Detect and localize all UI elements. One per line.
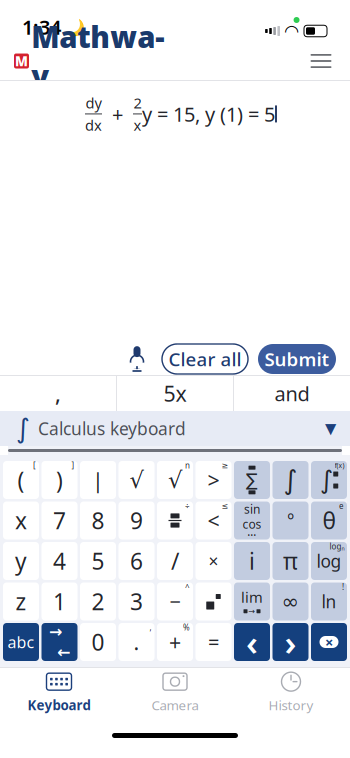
staticText: 7 [53, 505, 66, 535]
staticText: y = 15, y (1) = 5 [142, 101, 275, 127]
button[interactable] [272, 623, 308, 661]
button[interactable]: Submit [258, 344, 336, 374]
button[interactable]: ÷ [157, 501, 193, 539]
staticText: × [208, 549, 218, 572]
button[interactable]: Menu [300, 44, 342, 78]
button[interactable]: ≤ [195, 501, 231, 539]
button[interactable]: Logarithm base n [311, 542, 347, 580]
staticText: Submit [264, 347, 329, 371]
staticText: × [325, 632, 333, 652]
button[interactable]: Keyboard [1, 669, 117, 717]
staticText: z [15, 586, 26, 616]
button[interactable]: Definite integral [311, 461, 347, 499]
button[interactable]: [ [3, 461, 39, 499]
button[interactable]: ] [41, 461, 77, 499]
staticText: 5x [163, 379, 186, 408]
button[interactable] [41, 582, 77, 620]
button[interactable] [272, 582, 308, 620]
button[interactable] [80, 461, 116, 499]
staticText: a Chegg· service [101, 94, 164, 105]
button[interactable]: % [157, 623, 193, 661]
staticText: logₙ [329, 541, 344, 552]
button[interactable] [80, 582, 116, 620]
staticText: ∑ [246, 470, 258, 490]
button[interactable] [195, 623, 231, 661]
button[interactable] [3, 542, 39, 580]
button[interactable] [3, 582, 39, 620]
button[interactable] [3, 623, 39, 661]
button[interactable]: Switch keyboard layout [41, 623, 77, 661]
staticText: | [92, 466, 104, 494]
button[interactable] [80, 542, 116, 580]
button[interactable]: Voice input [122, 343, 152, 375]
button[interactable]: ∫ [0, 411, 350, 446]
staticText: ° [287, 509, 294, 532]
staticText: θ [322, 505, 335, 535]
staticText: Calculus keyboard [38, 417, 186, 440]
staticText: and [274, 380, 309, 407]
staticText: dy [85, 93, 101, 112]
staticText: Keyboard [27, 696, 90, 714]
button[interactable]: Clear all [162, 344, 248, 374]
staticText: lim [241, 587, 263, 607]
staticText: ln [321, 590, 336, 613]
staticText: → [248, 607, 255, 616]
staticText: % [183, 622, 190, 633]
button[interactable]: Delete [311, 623, 347, 661]
staticText: + [169, 628, 181, 656]
button[interactable]: , [0, 376, 116, 411]
button[interactable] [272, 501, 308, 539]
staticText: M [15, 52, 28, 70]
button[interactable] [80, 501, 116, 539]
button[interactable]: e [311, 501, 347, 539]
staticText: + [102, 101, 133, 127]
button[interactable] [234, 623, 270, 661]
button[interactable] [3, 501, 39, 539]
staticText: √ [129, 467, 143, 493]
button[interactable]: , [118, 623, 154, 661]
button[interactable]: Camera [117, 669, 233, 717]
button[interactable] [118, 461, 154, 499]
staticText: − [169, 588, 180, 615]
staticText: √ [168, 467, 182, 493]
button[interactable]: History [233, 669, 349, 717]
button[interactable] [41, 501, 77, 539]
button[interactable]: ^ [157, 582, 193, 620]
staticText: n [185, 460, 190, 471]
staticText: Mathway [31, 17, 164, 95]
button[interactable]: Summation [234, 461, 270, 499]
button[interactable] [272, 461, 308, 499]
button[interactable] [80, 623, 116, 661]
staticText: ∞ [281, 589, 299, 614]
button[interactable]: and [234, 376, 350, 411]
button[interactable] [41, 542, 77, 580]
staticText: ) [56, 465, 63, 495]
staticText: < [207, 506, 219, 535]
staticText: ‹ [246, 619, 258, 665]
staticText: x [15, 505, 27, 535]
button[interactable] [118, 542, 154, 580]
button[interactable]: Trigonometric functions [234, 501, 270, 539]
staticText: ∫ [283, 465, 297, 495]
button[interactable]: ≥ [195, 461, 231, 499]
button[interactable] [195, 542, 231, 580]
button[interactable]: n [157, 461, 193, 499]
staticText: Clear all [168, 347, 241, 371]
staticText: y [15, 546, 27, 576]
staticText: 3 [130, 586, 143, 616]
button[interactable] [118, 582, 154, 620]
button[interactable] [195, 582, 231, 620]
staticText: Camera [151, 696, 198, 714]
staticText: cos [242, 516, 261, 532]
button[interactable]: Limit [234, 582, 270, 620]
button[interactable] [272, 542, 308, 580]
staticText: ∫ [16, 413, 30, 444]
button[interactable]: ! [311, 582, 347, 620]
button[interactable] [157, 542, 193, 580]
staticText: 2 [133, 93, 141, 112]
staticText: e [339, 501, 344, 511]
button[interactable] [234, 542, 270, 580]
staticText: / [171, 546, 179, 576]
button[interactable]: 5x [117, 376, 233, 411]
button[interactable] [118, 501, 154, 539]
